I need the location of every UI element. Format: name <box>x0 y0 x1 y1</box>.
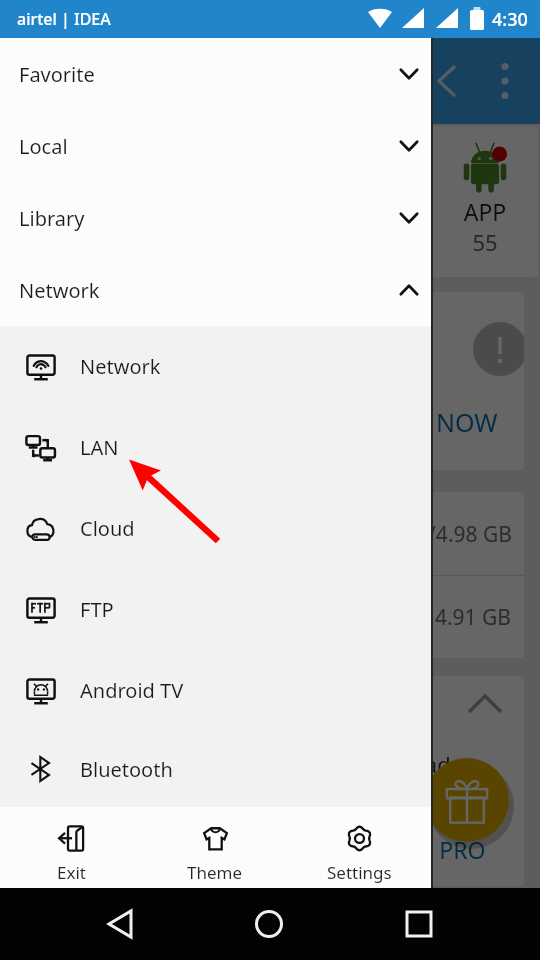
staticText: 6.72 GB/14.91 GB <box>339 603 511 632</box>
button[interactable]: Settings <box>287 807 431 888</box>
button[interactable]: Network <box>0 326 431 407</box>
staticText: GET PRO <box>391 834 486 865</box>
staticText: airtel | IDEA <box>17 8 111 30</box>
button[interactable]: Library <box>0 182 431 254</box>
staticText: Remove ads <box>336 749 462 779</box>
button[interactable]: Network <box>0 254 431 326</box>
button[interactable]: Bluetooth <box>0 731 431 807</box>
button[interactable]: Android TV <box>0 650 431 731</box>
button[interactable]: Cloud <box>0 488 431 569</box>
staticText: 3.12 GB/4.98 GB <box>352 520 512 549</box>
button[interactable]: Local <box>0 110 431 182</box>
button[interactable]: APP <box>6 126 538 277</box>
staticText: Android TV <box>80 677 184 704</box>
staticText: Favorite <box>19 61 391 88</box>
staticText: Network <box>19 277 391 304</box>
staticText: Exit <box>57 861 86 884</box>
staticText: 4:30 <box>492 7 528 32</box>
staticText: Settings <box>327 861 392 884</box>
staticText: 55 <box>457 227 513 257</box>
staticText: FTP <box>80 596 114 623</box>
button[interactable]: FTP <box>0 569 431 650</box>
button[interactable]: BACKUP NOW <box>6 292 524 470</box>
button[interactable]: 3.12 GB/4.98 GB <box>6 492 524 658</box>
button[interactable]: Theme <box>143 807 287 888</box>
staticText: Bluetooth <box>80 756 173 783</box>
button[interactable]: Gift offers <box>425 758 509 842</box>
button[interactable]: Exit <box>0 807 143 888</box>
staticText: Local <box>19 133 391 160</box>
button[interactable]: LAN <box>0 407 431 488</box>
button[interactable]: Remove ads <box>6 676 524 886</box>
staticText: Theme <box>187 861 243 884</box>
staticText: Library <box>19 205 391 232</box>
staticText: Network <box>80 353 161 380</box>
staticText: LAN <box>80 434 119 461</box>
staticText: BACKUP NOW <box>333 405 498 439</box>
staticText: APP <box>457 196 513 227</box>
button[interactable]: Favorite <box>0 38 431 110</box>
staticText: Cloud <box>80 515 135 542</box>
